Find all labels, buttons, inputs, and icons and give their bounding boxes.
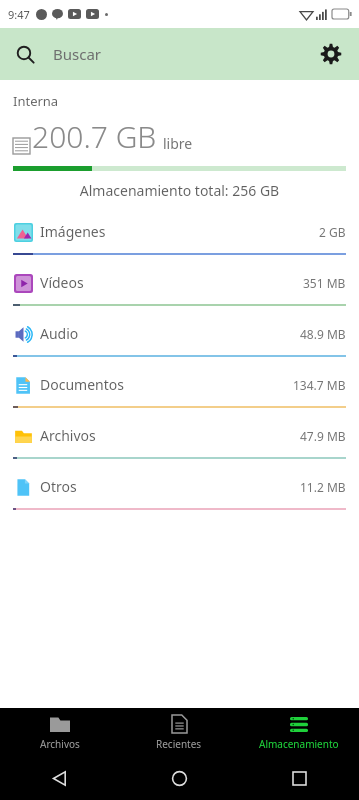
button[interactable]: Vídeos [0, 261, 359, 312]
button[interactable]: Archivos [0, 708, 119, 756]
button[interactable]: Imágenes [0, 210, 359, 261]
staticText: 200.7 GB [32, 116, 157, 157]
staticText: Vídeos [40, 273, 84, 292]
button[interactable]: Recent apps [239, 756, 359, 800]
button[interactable]: Recientes [119, 708, 239, 756]
staticText: 2 GB [319, 224, 346, 240]
staticText: Imágenes [40, 222, 106, 241]
staticText: Documentos [40, 375, 124, 394]
staticText: 48.9 MB [300, 326, 346, 342]
staticText: 9:47 [8, 7, 30, 22]
staticText: 11.2 MB [300, 479, 346, 495]
staticText: 134.7 MB [293, 377, 346, 393]
button[interactable]: Home [119, 756, 239, 800]
button[interactable]: Documentos [0, 363, 359, 414]
button[interactable]: Archivos [0, 414, 359, 465]
button[interactable]: Settings [303, 28, 359, 80]
staticText: Almacenamiento [259, 737, 339, 751]
staticText: Archivos [40, 426, 96, 445]
staticText: Otros [40, 477, 77, 496]
staticText: Buscar [53, 44, 102, 64]
staticText: Recientes [156, 737, 202, 751]
staticText: 47.9 MB [300, 428, 346, 444]
staticText: libre [163, 134, 193, 153]
button[interactable]: Otros [0, 465, 359, 516]
staticText: Interna [13, 92, 59, 110]
staticText: Audio [40, 324, 79, 343]
staticText: Archivos [40, 737, 80, 751]
button[interactable]: Buscar [0, 44, 303, 64]
staticText: 351 MB [303, 275, 346, 291]
button[interactable]: Back [0, 756, 119, 800]
button[interactable]: Almacenamiento [239, 708, 359, 756]
button[interactable]: Audio [0, 312, 359, 363]
staticText: Almacenamiento total: 256 GB [13, 181, 346, 200]
